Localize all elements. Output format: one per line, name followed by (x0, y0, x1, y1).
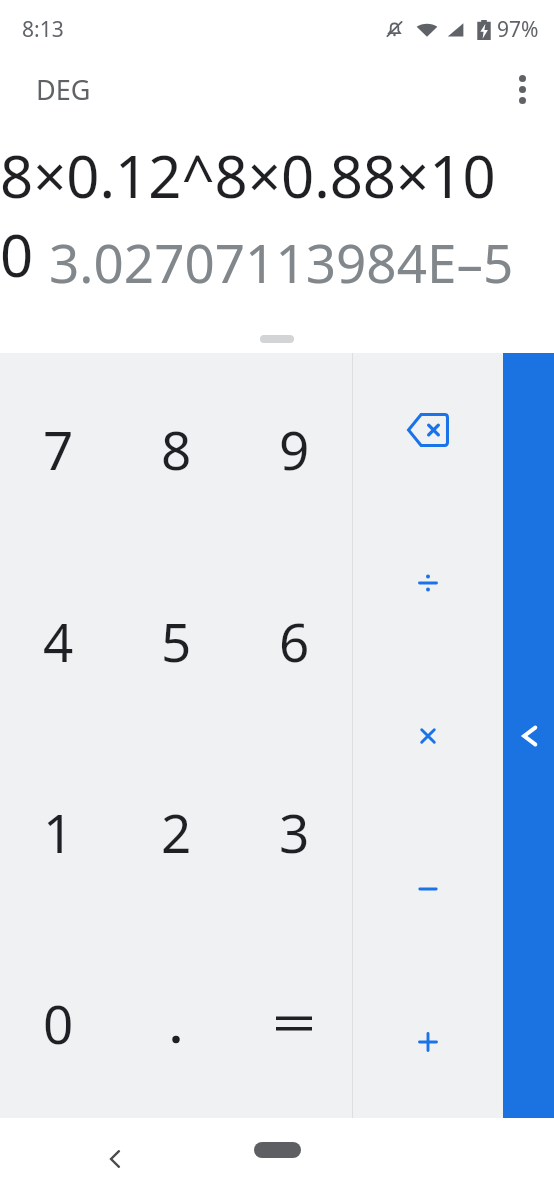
button[interactable]: Decimal point (117, 927, 235, 1118)
button[interactable]: 8 (117, 353, 235, 545)
staticText: 8×0.12^8×0.88×100 (0, 136, 514, 294)
button[interactable]: 9 (235, 353, 353, 545)
staticText: 3 (279, 796, 310, 868)
staticText: 9 (279, 413, 310, 485)
button[interactable]: Multiply (353, 659, 503, 812)
other: Decimal point (166, 998, 186, 1048)
staticText: 6 (279, 605, 310, 677)
button[interactable]: Drag handle (260, 335, 294, 343)
button[interactable]: Equals (235, 927, 353, 1118)
staticText: 97% (497, 15, 539, 44)
staticText: 8 (161, 413, 192, 485)
other: Multiply (411, 719, 445, 753)
button[interactable]: 1 (0, 736, 117, 927)
button[interactable]: 5 (117, 545, 235, 736)
staticText: 0 (43, 987, 74, 1059)
button[interactable]: Back (92, 1136, 138, 1182)
other: Divide (411, 566, 445, 600)
button[interactable]: Subtract (353, 812, 503, 965)
button[interactable]: Show advanced pad (503, 353, 554, 1118)
button[interactable]: 4 (0, 545, 117, 736)
staticText: 8:13 (22, 15, 64, 44)
button[interactable]: Home (254, 1142, 301, 1158)
staticText: 5 (161, 605, 192, 677)
button[interactable]: Divide (353, 506, 503, 659)
staticText: 3.02707113984E–5 (49, 226, 514, 298)
other: Equals (276, 1011, 312, 1035)
staticText: DEG (36, 71, 91, 108)
staticText: 4 (43, 605, 74, 677)
staticText: 7 (43, 413, 74, 485)
button[interactable]: 3 (235, 736, 353, 927)
other: Subtract (411, 872, 445, 906)
button[interactable]: 2 (117, 736, 235, 927)
staticText: 1 (43, 796, 74, 868)
button[interactable]: 6 (235, 545, 353, 736)
staticText: 2 (161, 796, 192, 868)
button[interactable]: DEG (0, 63, 105, 116)
other: Add (411, 1025, 445, 1059)
button[interactable]: Add (353, 965, 503, 1118)
button[interactable]: 7 (0, 353, 117, 545)
button[interactable]: More options (495, 62, 549, 116)
button[interactable]: Delete (353, 353, 503, 506)
other: Delete (407, 413, 449, 447)
button[interactable]: 0 (0, 927, 117, 1118)
